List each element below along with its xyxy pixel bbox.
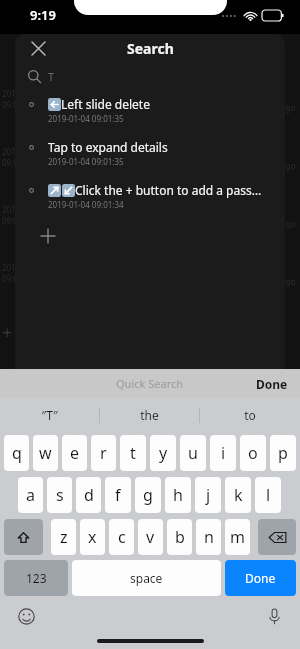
button[interactable]: o — [240, 435, 266, 471]
staticText: + — [2, 320, 13, 345]
staticText: Done — [256, 376, 288, 392]
staticText: l — [266, 484, 271, 506]
staticText: 2019-01-04 — [2, 88, 44, 99]
staticText: s — [56, 484, 64, 506]
staticText: 09:01:35 — [2, 99, 34, 110]
staticText: the — [140, 407, 159, 423]
button[interactable]: x — [80, 519, 105, 555]
staticText: g — [143, 484, 153, 506]
staticText: space — [130, 570, 163, 586]
button[interactable]: Click the + button to add a pass… — [15, 180, 285, 223]
button[interactable]: T — [15, 64, 285, 88]
button[interactable]: Add — [15, 223, 285, 257]
button[interactable]: i — [210, 435, 236, 471]
staticText: t — [130, 442, 136, 464]
button[interactable]: w — [33, 435, 58, 471]
button[interactable]: u — [180, 435, 206, 471]
button[interactable]: z — [51, 519, 76, 555]
staticText: 09:01:35 — [2, 215, 34, 226]
staticText: 09:01:35 — [2, 157, 34, 168]
button[interactable]: g — [135, 477, 161, 513]
staticText: i — [221, 442, 226, 464]
button[interactable]: Close — [23, 34, 53, 62]
button[interactable]: p — [270, 435, 296, 471]
staticText: Click the + button to add a pass… — [75, 182, 262, 198]
staticText: f — [115, 484, 121, 506]
button[interactable]: Left slide delete — [15, 94, 285, 137]
button[interactable]: d — [76, 477, 101, 513]
staticText: m — [230, 526, 245, 548]
button[interactable]: s — [47, 477, 72, 513]
button[interactable]: Tap to expand details — [15, 137, 285, 180]
staticText: 123 — [26, 570, 47, 586]
button[interactable]: r — [91, 435, 116, 471]
staticText: 2019-01-04 09:01:35 — [48, 113, 124, 124]
staticText: h — [173, 484, 183, 506]
staticText: k — [234, 484, 243, 506]
button[interactable]: m — [225, 519, 250, 555]
button[interactable]: c — [109, 519, 134, 555]
staticText: v — [146, 526, 155, 548]
staticText: T — [48, 69, 55, 84]
staticText: 2019-01-04 09:01:34 — [48, 199, 124, 210]
button[interactable]: k — [225, 477, 251, 513]
staticText: ago — [281, 276, 296, 287]
button[interactable]: the — [100, 398, 199, 432]
staticText: p — [278, 442, 288, 464]
staticText: c — [118, 526, 126, 548]
button[interactable]: b — [167, 519, 192, 555]
staticText: z — [60, 526, 68, 548]
button[interactable]: Shift — [4, 519, 43, 555]
staticText: o — [248, 442, 258, 464]
staticText: w — [39, 442, 52, 464]
staticText: 2019-01-04 — [2, 204, 44, 215]
staticText: Tap to expand details — [48, 139, 168, 155]
button[interactable]: 123 — [4, 560, 68, 596]
staticText: j — [206, 484, 211, 506]
button[interactable]: to — [200, 398, 299, 432]
button[interactable]: Emoji — [14, 604, 38, 628]
staticText: 2019-01-04 — [2, 146, 44, 157]
staticText: Done — [245, 570, 276, 586]
staticText: Left slide delete — [61, 96, 150, 112]
button[interactable]: h — [165, 477, 191, 513]
button[interactable]: t — [120, 435, 146, 471]
staticText: y — [159, 442, 168, 464]
button[interactable]: n — [196, 519, 221, 555]
button[interactable]: ″T″ — [0, 398, 99, 432]
staticText: n — [204, 526, 214, 548]
staticText: u — [188, 442, 198, 464]
button[interactable]: Dictate — [262, 604, 286, 628]
staticText: r — [100, 442, 107, 464]
staticText: ago — [281, 218, 296, 229]
staticText: 09:01:35 — [2, 273, 34, 284]
staticText: a — [26, 484, 35, 506]
staticText: ″T″ — [41, 407, 58, 423]
button[interactable]: y — [150, 435, 176, 471]
staticText: Search — [127, 39, 174, 58]
staticText: 2019-01-04 — [2, 262, 44, 273]
button[interactable]: v — [138, 519, 163, 555]
staticText: 2019-01-04 09:01:35 — [48, 156, 124, 167]
staticText: e — [70, 442, 80, 464]
staticText: ago — [281, 160, 296, 171]
button[interactable]: l — [255, 477, 281, 513]
button[interactable]: Backspace — [258, 519, 296, 555]
button[interactable]: j — [195, 477, 221, 513]
button[interactable]: space — [72, 560, 221, 596]
staticText: 9:19 — [30, 6, 56, 24]
button[interactable]: q — [4, 435, 29, 471]
staticText: to — [244, 407, 256, 423]
staticText: x — [88, 526, 97, 548]
button[interactable]: a — [18, 477, 43, 513]
staticText: b — [175, 526, 185, 548]
button[interactable]: f — [105, 477, 131, 513]
button[interactable]: Done — [225, 560, 296, 596]
staticText: Quick Search — [116, 376, 184, 391]
staticText: d — [84, 484, 94, 506]
button[interactable]: e — [62, 435, 87, 471]
staticText: q — [12, 442, 22, 464]
staticText: ago — [281, 102, 296, 113]
button[interactable]: Done — [244, 372, 300, 396]
